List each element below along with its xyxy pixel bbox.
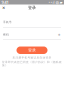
staticText: 9:41	[1, 0, 8, 5]
staticText: 登录即代表您已同意《用户协议》和《隐私政策》	[2, 60, 62, 67]
staticText: ✕	[2, 5, 5, 10]
staticText: 登录	[28, 48, 36, 53]
button[interactable]: Show password	[57, 33, 61, 36]
staticText: ◉	[58, 33, 60, 36]
button[interactable]: 登录	[16, 46, 47, 54]
button[interactable]: Close	[0, 4, 7, 11]
staticText: ••ıl ◍ ▰	[48, 0, 62, 5]
staticText: 密码	[3, 33, 9, 36]
staticText: 登录	[28, 5, 36, 10]
staticText: 未注册手机号验证后自动登录	[12, 56, 51, 59]
staticText: 手机号	[3, 20, 12, 24]
